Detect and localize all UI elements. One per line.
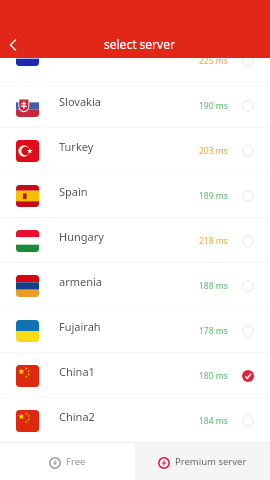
staticText: Slovakia [59,94,101,109]
staticText: China1 [59,364,95,379]
button[interactable]: Premium server [135,443,270,480]
button[interactable]: Free [0,443,135,480]
staticText: 189 ms [199,190,228,202]
button[interactable]: Slovakia [0,83,270,128]
staticText: 218 ms [199,235,228,247]
staticText: Free [66,455,86,468]
staticText: Turkey [59,139,94,154]
button[interactable]: Fujairah [0,308,270,353]
staticText: 178 ms [199,325,228,337]
staticText: Premium server [175,455,247,468]
staticText: Spain [59,184,88,199]
button[interactable]: Back [1,33,25,57]
button[interactable]: China1 [0,353,270,398]
staticText: 188 ms [199,280,228,292]
button[interactable]: armenia [0,263,270,308]
button[interactable]: Spain [0,173,270,218]
staticText: 203 ms [199,145,228,157]
staticText: 190 ms [199,100,228,112]
staticText: China2 [59,409,95,424]
staticText: 180 ms [199,370,228,382]
staticText: select server [104,36,175,52]
staticText: 184 ms [199,415,228,427]
staticText: 225 ms [199,55,228,67]
staticText: Hungary [59,229,104,244]
button[interactable]: Hungary [0,218,270,263]
button[interactable]: 225 ms [0,38,270,83]
button[interactable]: Turkey [0,128,270,173]
staticText: armenia [59,274,103,289]
staticText: Fujairah [59,319,101,334]
button[interactable]: China2 [0,398,270,443]
